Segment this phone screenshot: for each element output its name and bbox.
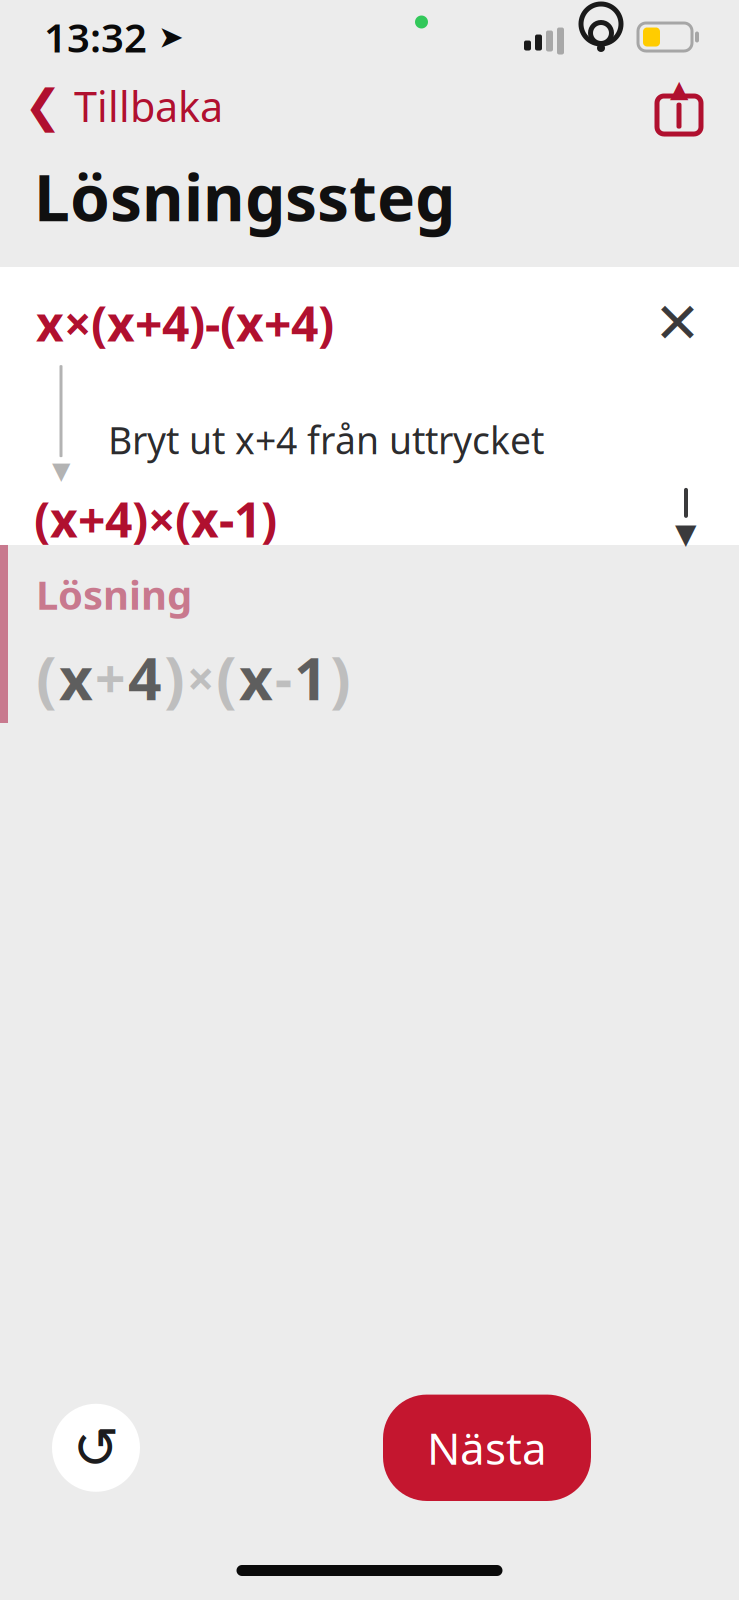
- staticText: x×(x+4)-(x+4): [36, 291, 334, 355]
- staticText: 13:32: [44, 10, 147, 63]
- button[interactable]: Ångra: [52, 1404, 140, 1492]
- staticText: ▼: [675, 518, 697, 550]
- button[interactable]: ❮: [0, 69, 237, 143]
- staticText: 1: [294, 639, 328, 716]
- staticText: ): [164, 637, 185, 718]
- staticText: ▲: [670, 75, 688, 103]
- button[interactable]: Stäng: [630, 283, 725, 363]
- staticText: ❮: [24, 80, 62, 132]
- staticText: ×: [187, 646, 214, 709]
- staticText: ): [330, 637, 351, 718]
- staticText: x: [239, 639, 273, 716]
- staticText: (: [36, 637, 57, 718]
- staticText: Bryt ut x+4 från uttrycket: [108, 415, 544, 465]
- staticText: ➤: [147, 20, 184, 54]
- staticText: 4: [128, 639, 162, 716]
- staticText: ↺: [72, 1416, 119, 1480]
- staticText: x: [59, 639, 93, 716]
- staticText: -: [275, 642, 292, 713]
- button[interactable]: Nästa steg: [647, 487, 725, 551]
- staticText: Tillbaka: [74, 79, 223, 133]
- staticText: (: [216, 637, 237, 718]
- staticText: Lösning: [36, 568, 192, 621]
- staticText: Lösningssteg: [34, 154, 455, 239]
- staticText: ▼: [52, 457, 70, 484]
- button[interactable]: Nästa: [383, 1395, 591, 1501]
- staticText: Nästa: [427, 1419, 547, 1477]
- staticText: +: [95, 642, 126, 713]
- staticText: (x+4)×(x-1): [34, 487, 277, 551]
- button[interactable]: Dela: [633, 71, 725, 141]
- staticText: ✕: [654, 291, 701, 355]
